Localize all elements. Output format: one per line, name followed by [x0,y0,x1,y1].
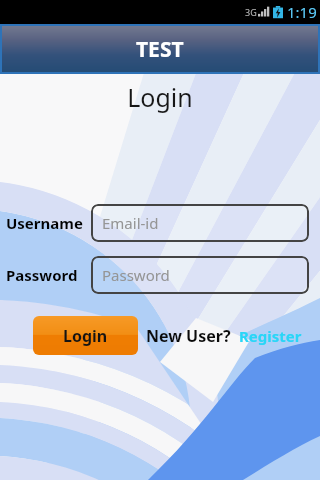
staticText: 1:19 [287,2,317,22]
staticText: New User? [146,325,231,347]
staticText: Login [63,325,108,347]
staticText: TEST [136,35,184,64]
staticText: Username [6,213,83,233]
button[interactable]: Email-id [91,204,309,242]
staticText: Email-id [102,213,159,233]
staticText: Password [6,265,78,285]
staticText: Register [239,326,302,346]
staticText: Login [0,80,320,114]
button[interactable]: Login [33,316,138,355]
button[interactable]: Register [239,326,302,346]
staticText: 3G [245,6,257,18]
staticText: Password [102,265,170,285]
button[interactable]: Password [91,256,309,294]
